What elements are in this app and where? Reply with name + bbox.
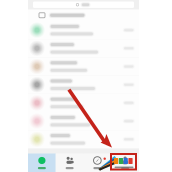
button[interactable]: Chats bbox=[28, 153, 56, 172]
button[interactable]: Me bbox=[111, 153, 139, 172]
button[interactable] bbox=[33, 1, 134, 8]
button[interactable] bbox=[28, 112, 139, 130]
button[interactable] bbox=[28, 39, 139, 57]
button[interactable]: Contacts bbox=[56, 153, 84, 172]
button[interactable] bbox=[28, 130, 139, 148]
button[interactable]: Discover bbox=[83, 153, 111, 172]
button[interactable] bbox=[28, 21, 139, 39]
button[interactable] bbox=[28, 76, 139, 94]
button[interactable] bbox=[28, 94, 139, 112]
button[interactable] bbox=[28, 57, 139, 76]
button[interactable] bbox=[28, 9, 139, 21]
